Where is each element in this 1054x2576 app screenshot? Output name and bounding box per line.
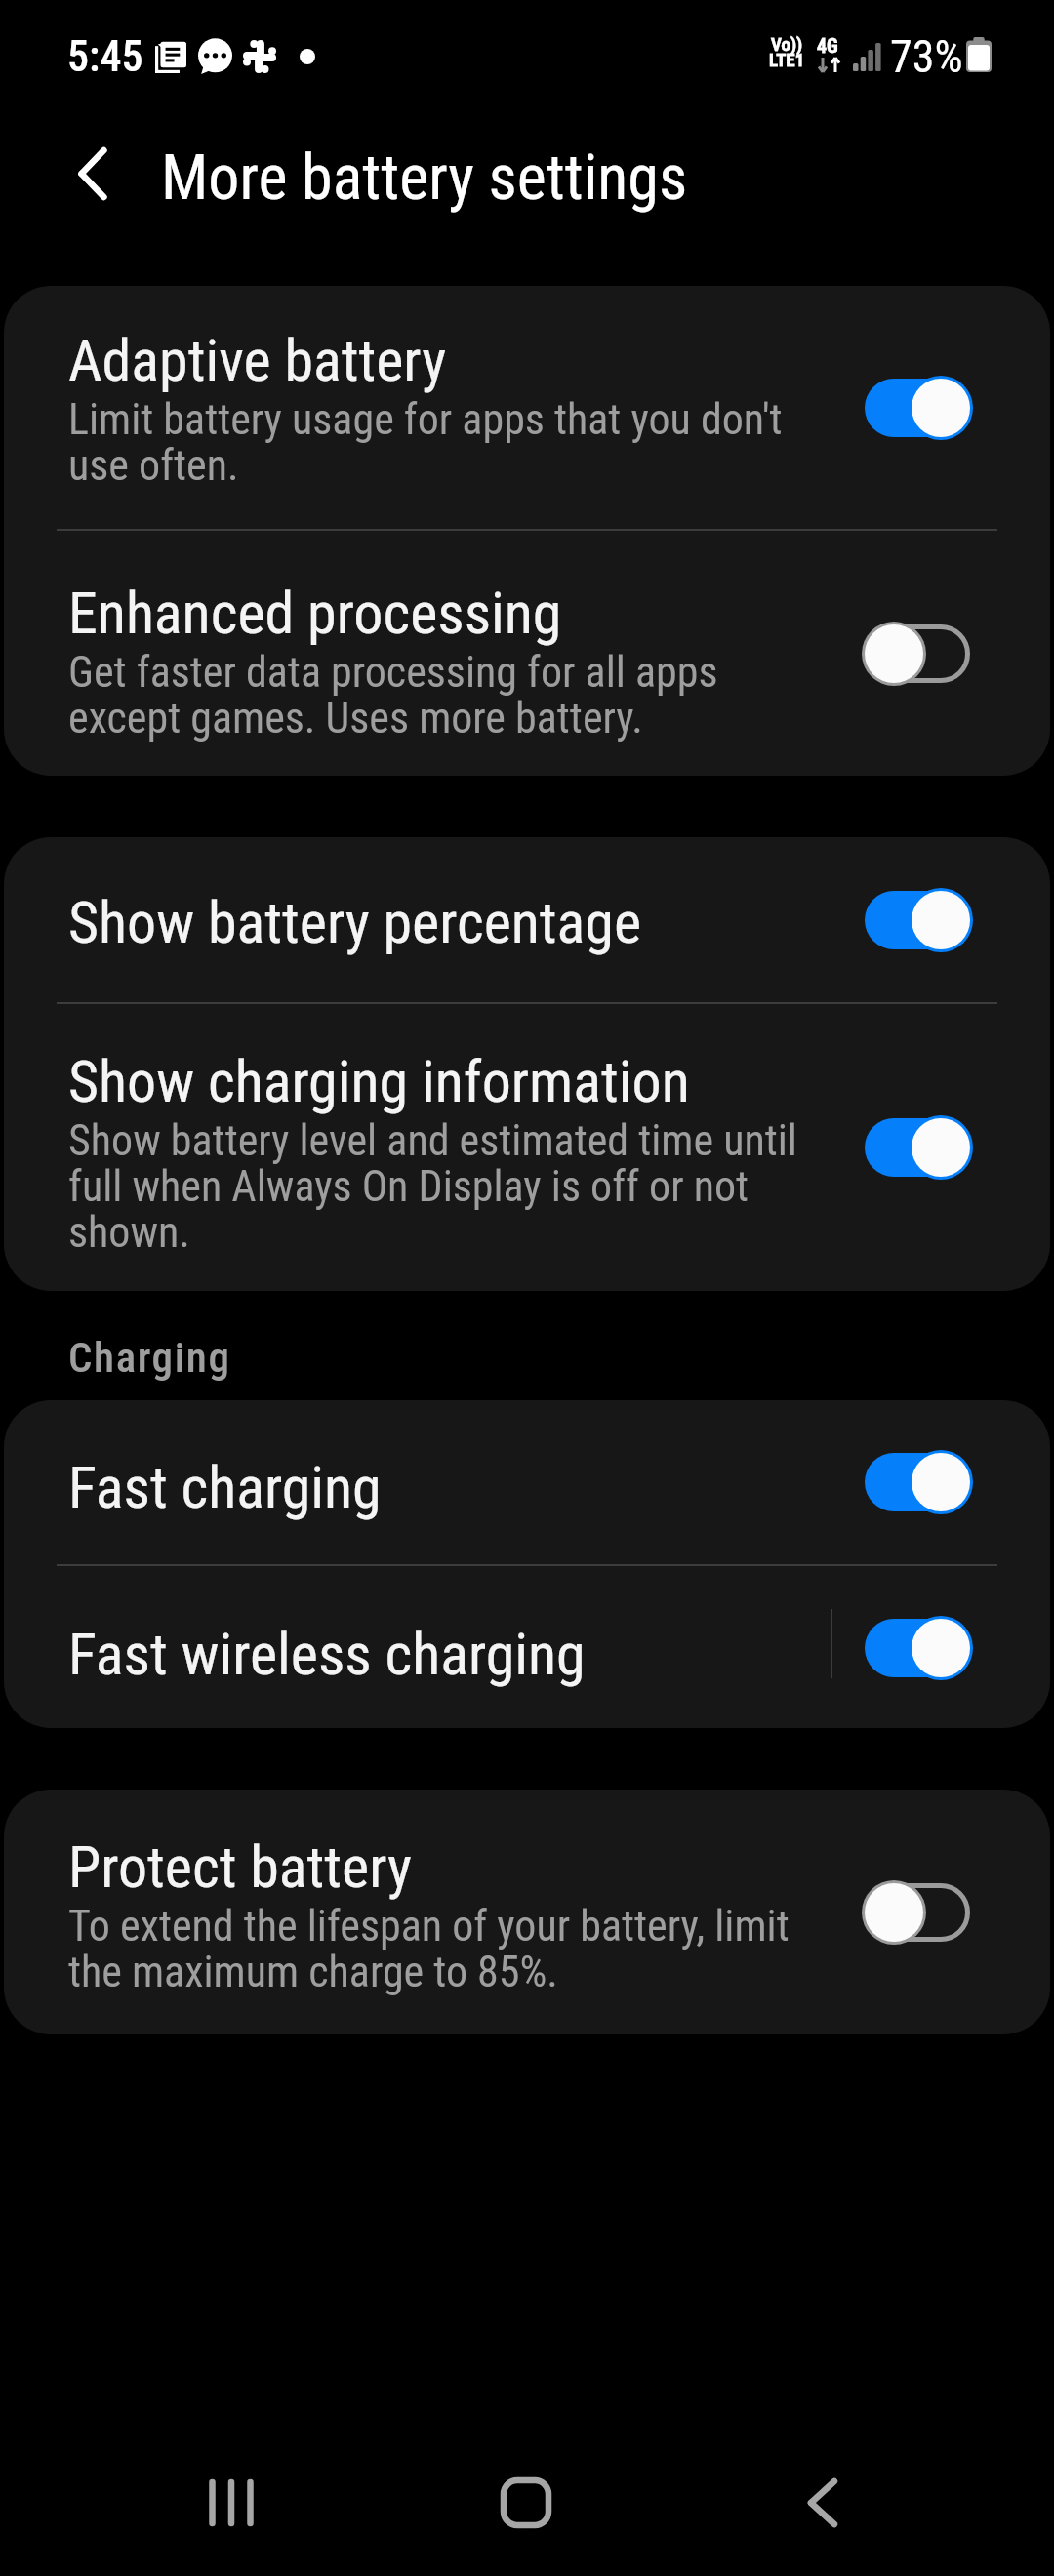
staticText: Get faster data processing for all apps … [68,647,820,744]
staticText: 73% [890,30,963,83]
button[interactable]: Navigate up [52,135,130,213]
staticText: To extend the lifespan of your battery, … [68,1901,820,1997]
staticText: Limit battery usage for apps that you do… [68,394,820,491]
button[interactable]: Home [467,2444,585,2561]
staticText: Enhanced processing [68,579,562,647]
staticText: Charging [68,1333,231,1382]
button[interactable]: Back [762,2444,879,2561]
staticText: Show charging information [68,1047,690,1115]
staticText: Vo)) [771,33,803,55]
staticText: Fast wireless charging [68,1620,586,1688]
staticText: Protect battery [68,1832,412,1901]
button[interactable]: Fast charging [4,1400,1050,1564]
staticText: 4G [817,34,838,57]
staticText: Show battery level and estimated time un… [68,1115,820,1258]
button[interactable]: Protect battery [4,1790,1050,2034]
staticText: More battery settings [161,141,688,215]
staticText: 5:45 [67,31,143,82]
button[interactable]: Enhanced processing [4,531,1050,776]
staticText: Show battery percentage [68,888,642,956]
button[interactable]: Adaptive battery [4,286,1050,529]
button[interactable]: Recent apps [173,2444,290,2561]
button[interactable]: Show battery percentage [4,837,1050,1002]
staticText: Adaptive battery [68,326,447,394]
staticText: LTE1 [769,49,805,70]
staticText: Fast charging [68,1453,382,1521]
button[interactable]: Show charging information [4,1004,1050,1291]
button[interactable]: Fast wireless charging [4,1566,1050,1728]
